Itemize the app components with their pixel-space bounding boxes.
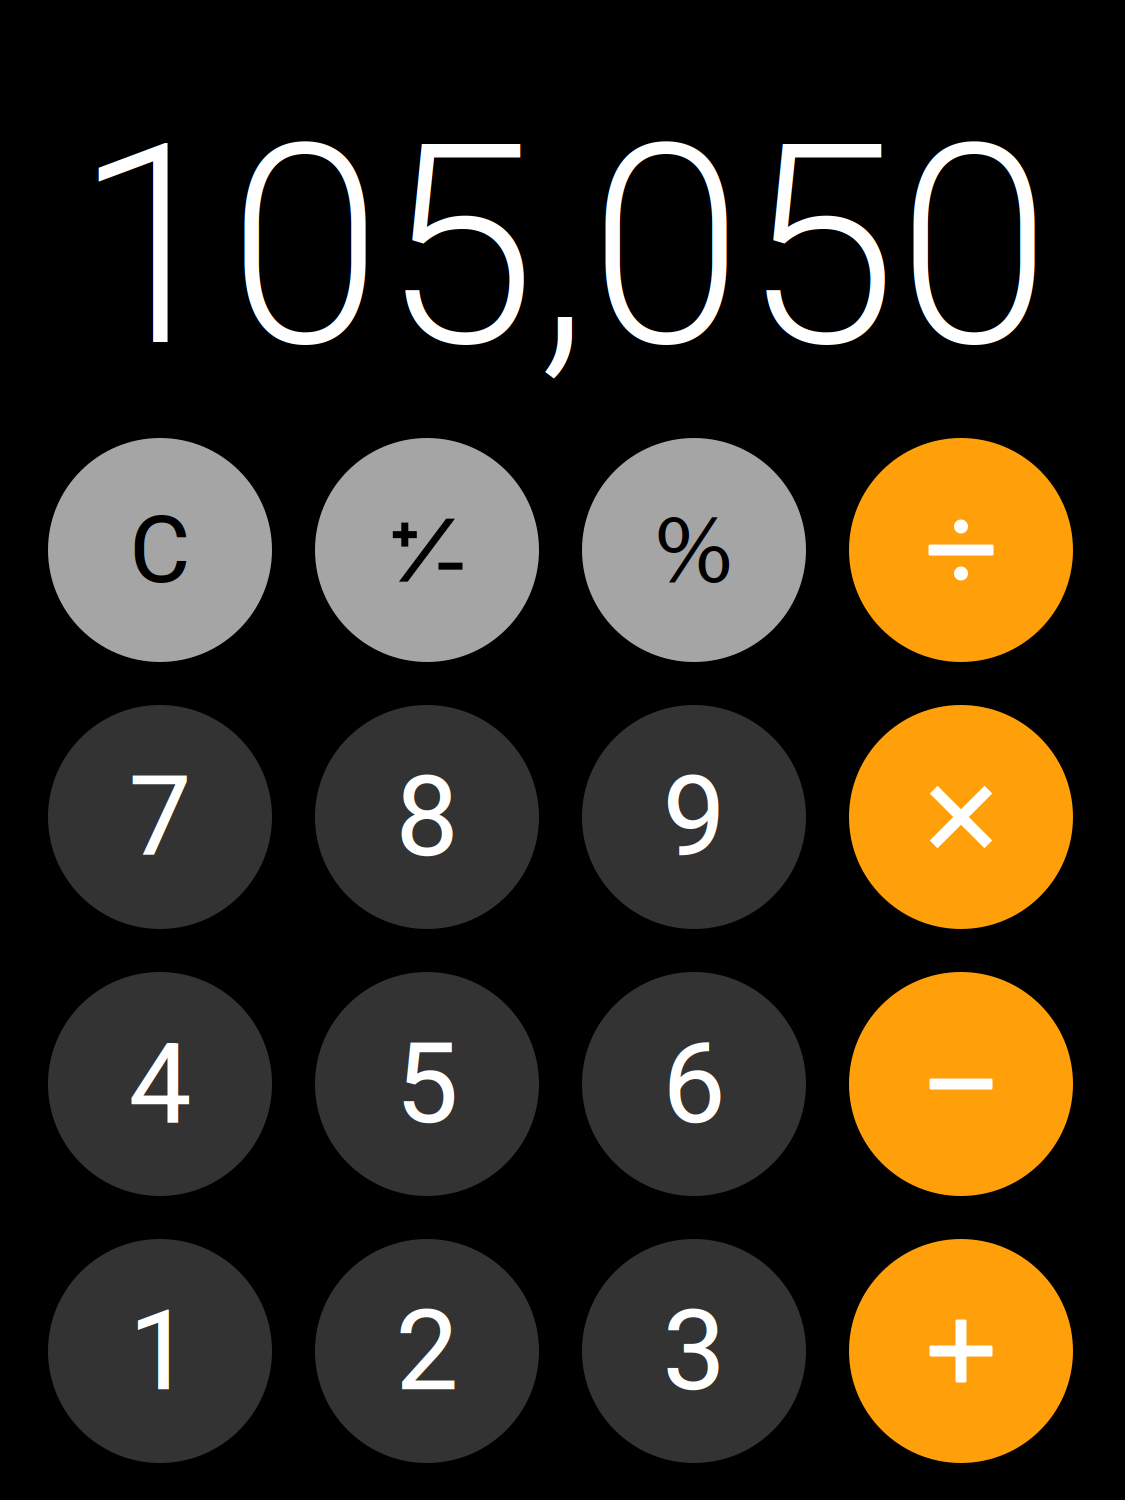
button[interactable]: Add bbox=[849, 1239, 1073, 1463]
button[interactable]: 2 bbox=[315, 1239, 539, 1463]
button[interactable]: Plus minus bbox=[315, 438, 539, 662]
button[interactable]: C bbox=[48, 438, 272, 662]
staticText: 105,050 bbox=[74, 83, 1051, 410]
staticText: 7 bbox=[128, 751, 191, 883]
button[interactable]: Divide bbox=[849, 438, 1073, 662]
staticText: 6 bbox=[662, 1018, 725, 1150]
button[interactable]: 4 bbox=[48, 972, 272, 1196]
staticText: 2 bbox=[395, 1285, 458, 1417]
button[interactable]: 8 bbox=[315, 705, 539, 929]
staticText: 8 bbox=[395, 751, 458, 883]
button[interactable]: 1 bbox=[48, 1239, 272, 1463]
button[interactable]: Multiply bbox=[849, 705, 1073, 929]
button[interactable]: % bbox=[582, 438, 806, 662]
staticText: 3 bbox=[662, 1285, 725, 1417]
button[interactable]: 9 bbox=[582, 705, 806, 929]
staticText: % bbox=[654, 498, 734, 602]
staticText: 1 bbox=[128, 1285, 191, 1417]
button[interactable]: 5 bbox=[315, 972, 539, 1196]
button[interactable]: Subtract bbox=[849, 972, 1073, 1196]
staticText: 5 bbox=[395, 1018, 458, 1150]
staticText: C bbox=[129, 495, 190, 605]
button[interactable]: 3 bbox=[582, 1239, 806, 1463]
staticText: 4 bbox=[128, 1018, 191, 1150]
staticText: 9 bbox=[662, 751, 725, 883]
button[interactable]: 7 bbox=[48, 705, 272, 929]
button[interactable]: 6 bbox=[582, 972, 806, 1196]
